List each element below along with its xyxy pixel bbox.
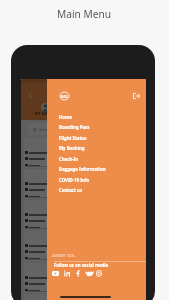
button[interactable] [24,263,142,293]
button[interactable] [24,200,142,230]
staticText: Home [59,114,72,120]
button[interactable]: YouTube [52,270,59,277]
button[interactable]: COVID-19 Info [47,175,146,185]
staticText: Check-In [59,156,79,162]
button[interactable] [24,138,142,168]
staticText: Baggage Information [59,166,106,172]
button[interactable]: ABOUT GOL [52,253,76,258]
staticText: My Booking [59,145,85,151]
button[interactable]: Flight Status [47,133,146,143]
staticText: Follow us on social media [54,262,109,268]
button[interactable]: Home [47,112,146,122]
staticText: Search [39,127,52,132]
button[interactable] [24,231,142,261]
button[interactable]: LinkedIn [64,270,71,277]
button[interactable]: My Booking [47,143,146,153]
button[interactable]: Twitter [85,270,94,277]
button[interactable] [24,169,142,199]
button[interactable]: Baggage Information [47,164,146,174]
button[interactable]: Facebook [76,270,80,277]
staticText: Contact us [59,187,83,193]
button[interactable]: Log out [133,93,140,99]
button[interactable]: Contact us [47,185,146,195]
staticText: Boarding Pass [59,124,90,130]
staticText: Flight Status [59,135,87,141]
staticText: ABOUT GOL [52,253,76,258]
button[interactable]: Instagram [96,270,102,277]
staticText: GOL [61,94,69,99]
button[interactable]: Boarding Pass [47,122,146,132]
staticText: Main Menu [57,7,112,21]
staticText: BY NAME SURNAME [35,111,76,117]
button[interactable] [24,294,142,300]
staticText: COVID-19 Info [59,177,90,183]
button[interactable]: Check-In [47,154,146,164]
